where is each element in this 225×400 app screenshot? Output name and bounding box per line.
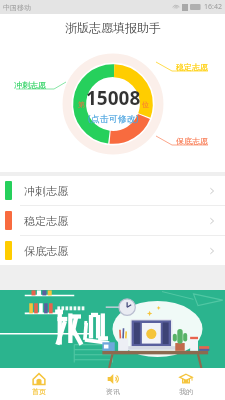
button[interactable]: 资讯 — [78, 368, 148, 400]
button[interactable]: 我的 — [151, 368, 221, 400]
staticText: 浙版志愿填报助手 — [65, 20, 161, 35]
button[interactable]: 稳定志愿 — [0, 206, 225, 235]
staticText: 保底志愿 — [176, 136, 208, 146]
staticText: 首页 — [32, 387, 46, 396]
staticText: 资讯 — [106, 387, 120, 396]
staticText: 保底志愿 — [24, 244, 68, 258]
staticText: 16:42 — [204, 2, 222, 12]
staticText: 我的 — [179, 387, 193, 396]
staticText: 冲刺志愿 — [14, 80, 46, 90]
button[interactable]: 首页 — [4, 368, 74, 400]
staticText: 15008 — [86, 85, 141, 111]
button[interactable]: (点击可修改) — [88, 112, 139, 124]
staticText: 稳定志愿 — [24, 214, 68, 228]
staticText: 冲刺志愿 — [24, 184, 68, 198]
button[interactable]: 保底志愿 — [0, 236, 225, 265]
staticText: (点击可修改) — [88, 112, 139, 124]
staticText: 稳定志愿 — [176, 62, 208, 72]
button[interactable]: 冲刺志愿 — [0, 176, 225, 205]
staticText: 中国移动 — [3, 3, 31, 12]
staticText: 第 — [78, 100, 85, 109]
staticText: 位 — [142, 100, 149, 109]
